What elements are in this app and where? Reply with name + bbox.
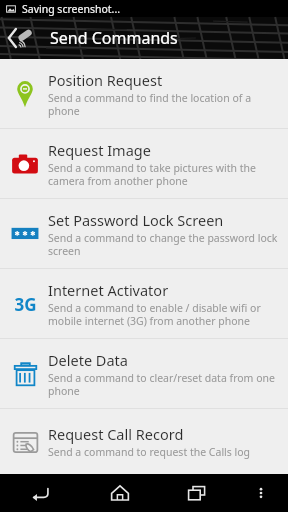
button[interactable]: Back: [0, 474, 80, 512]
staticText: 3G: [14, 293, 37, 316]
button[interactable]: More options: [234, 474, 288, 512]
button[interactable]: Back: [0, 17, 42, 59]
staticText: Position Request: [48, 70, 163, 90]
staticText: Saving screenshot...: [22, 2, 121, 16]
staticText: Internet Activator: [48, 280, 169, 300]
button[interactable]: Delete Data: [0, 339, 288, 408]
staticText: Request Call Record: [48, 424, 184, 444]
staticText: Set Password Lock Screen: [48, 210, 224, 230]
staticText: Send a command to take pictures with the…: [48, 161, 256, 188]
staticText: Delete Data: [48, 350, 128, 370]
button[interactable]: 3G: [0, 269, 288, 338]
button[interactable]: Request Call Record: [0, 409, 288, 474]
button[interactable]: Position Request: [0, 59, 288, 128]
button[interactable]: Request Image: [0, 129, 288, 198]
staticText: Request Image: [48, 140, 151, 160]
button[interactable]: Set Password Lock Screen: [0, 199, 288, 268]
staticText: Send a command to clear/reset data from …: [48, 371, 275, 398]
button[interactable]: Home: [80, 474, 160, 512]
staticText: Send a command to request the Calls log: [48, 445, 251, 459]
button[interactable]: Recent apps: [160, 474, 234, 512]
staticText: Send a command to find the location of a…: [48, 91, 252, 118]
staticText: Send Commands: [50, 27, 178, 49]
staticText: Send a command to change the password lo…: [48, 231, 278, 258]
staticText: Send a command to enable / disable wifi …: [48, 301, 261, 328]
